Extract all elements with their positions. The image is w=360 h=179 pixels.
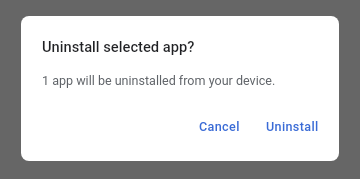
button[interactable]: Uninstall (258, 113, 327, 140)
staticText: Cancel (199, 119, 240, 134)
staticText: Uninstall (266, 119, 319, 134)
staticText: Uninstall selected app? (42, 38, 195, 55)
staticText: 1 app will be uninstalled from your devi… (42, 73, 276, 88)
button[interactable]: Cancel (191, 113, 248, 140)
